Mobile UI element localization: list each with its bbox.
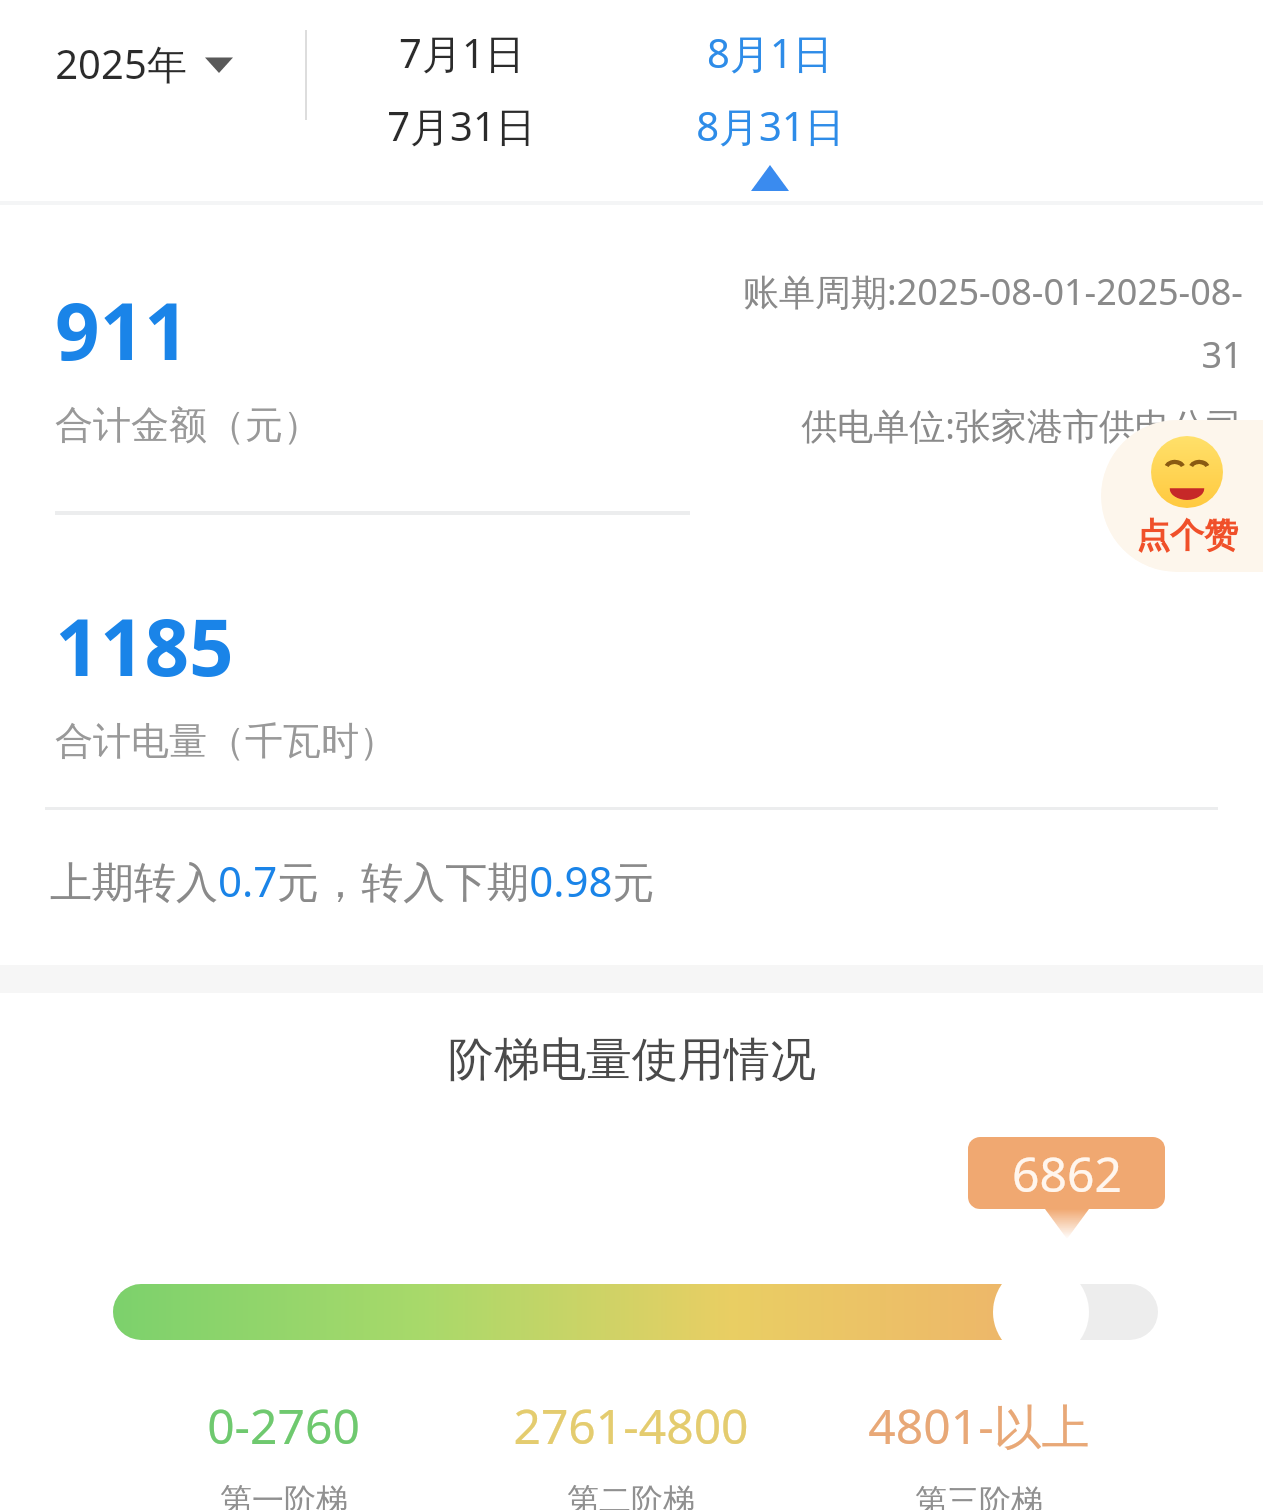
staticText: 第三阶梯	[915, 1481, 1043, 1510]
staticText: 0-2760	[207, 1393, 360, 1458]
button[interactable]: 点个赞	[1101, 420, 1263, 572]
staticText: 账单周期:2025-08-01-2025-08-	[743, 267, 1243, 316]
button[interactable]: 0-2760	[110, 1393, 457, 1510]
staticText: 上期转入0.7元，转入下期0.98元	[50, 852, 655, 909]
staticText: 合计金额（元）	[55, 401, 321, 449]
staticText: 点个赞	[1136, 514, 1238, 557]
button[interactable]: 2025年	[0, 0, 305, 201]
staticText: 31	[1201, 330, 1243, 379]
staticText: 8月1日	[707, 25, 833, 80]
button[interactable]: 7月1日	[307, 0, 616, 201]
button[interactable]: 用电量滑块	[993, 1264, 1089, 1360]
staticText: 7月31日	[387, 98, 536, 153]
staticText: 供电单位:张家港市供电公司	[801, 401, 1243, 450]
staticText: 7月1日	[399, 25, 525, 80]
staticText: 第二阶梯	[567, 1480, 695, 1510]
staticText: 6862	[1012, 1141, 1122, 1206]
staticText: 8月31日	[696, 98, 845, 153]
staticText: 2761-4800	[513, 1393, 749, 1458]
button[interactable]: 4801-以上	[805, 1393, 1153, 1510]
staticText: 4801-以上	[868, 1393, 1090, 1459]
button[interactable]: 8月1日	[616, 0, 924, 201]
staticText: 阶梯电量使用情况	[448, 1031, 816, 1089]
button[interactable]: 2761-4800	[457, 1393, 805, 1510]
staticText: 第一阶梯	[220, 1480, 348, 1510]
staticText: 合计电量（千瓦时）	[55, 717, 397, 765]
staticText: 1185	[55, 593, 234, 699]
staticText: 2025年	[55, 36, 187, 91]
staticText: 911	[55, 277, 189, 383]
